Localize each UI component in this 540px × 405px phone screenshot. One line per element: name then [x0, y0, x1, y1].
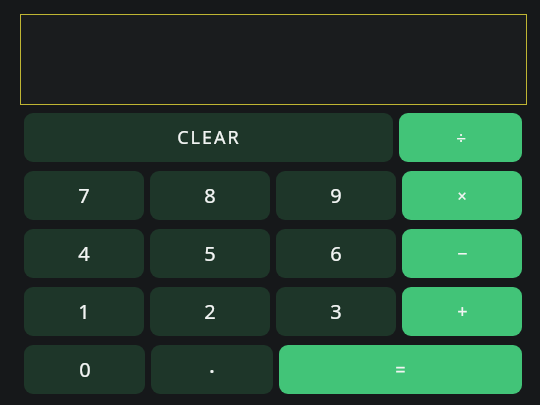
staticText: ·: [209, 355, 215, 385]
staticText: −: [457, 241, 468, 266]
staticText: ×: [457, 185, 467, 207]
staticText: +: [457, 299, 468, 324]
button[interactable]: Equals: [279, 345, 522, 394]
button[interactable]: 8: [150, 171, 270, 220]
button[interactable]: 0: [24, 345, 145, 394]
button[interactable]: 9: [276, 171, 396, 220]
staticText: 6: [330, 240, 342, 267]
button[interactable]: CLEAR: [24, 113, 393, 162]
button[interactable]: 4: [24, 229, 144, 278]
button[interactable]: 1: [24, 287, 144, 336]
button[interactable]: Subtract: [402, 229, 522, 278]
staticText: 4: [78, 240, 90, 267]
staticText: 2: [204, 298, 216, 325]
button[interactable]: Add: [402, 287, 522, 336]
staticText: =: [395, 357, 406, 382]
button[interactable]: 7: [24, 171, 144, 220]
button[interactable]: 6: [276, 229, 396, 278]
staticText: 1: [78, 298, 90, 325]
button[interactable]: Divide: [399, 113, 522, 162]
staticText: 9: [330, 182, 342, 209]
button[interactable]: 2: [150, 287, 270, 336]
staticText: CLEAR: [177, 125, 241, 150]
staticText: ÷: [456, 126, 466, 149]
button[interactable]: ·: [151, 345, 273, 394]
staticText: 7: [78, 182, 90, 209]
staticText: 3: [330, 298, 342, 325]
button[interactable]: 3: [276, 287, 396, 336]
button[interactable]: Multiply: [402, 171, 522, 220]
staticText: 8: [204, 182, 216, 209]
staticText: 0: [79, 356, 91, 383]
button[interactable]: 5: [150, 229, 270, 278]
staticText: 5: [204, 240, 216, 267]
